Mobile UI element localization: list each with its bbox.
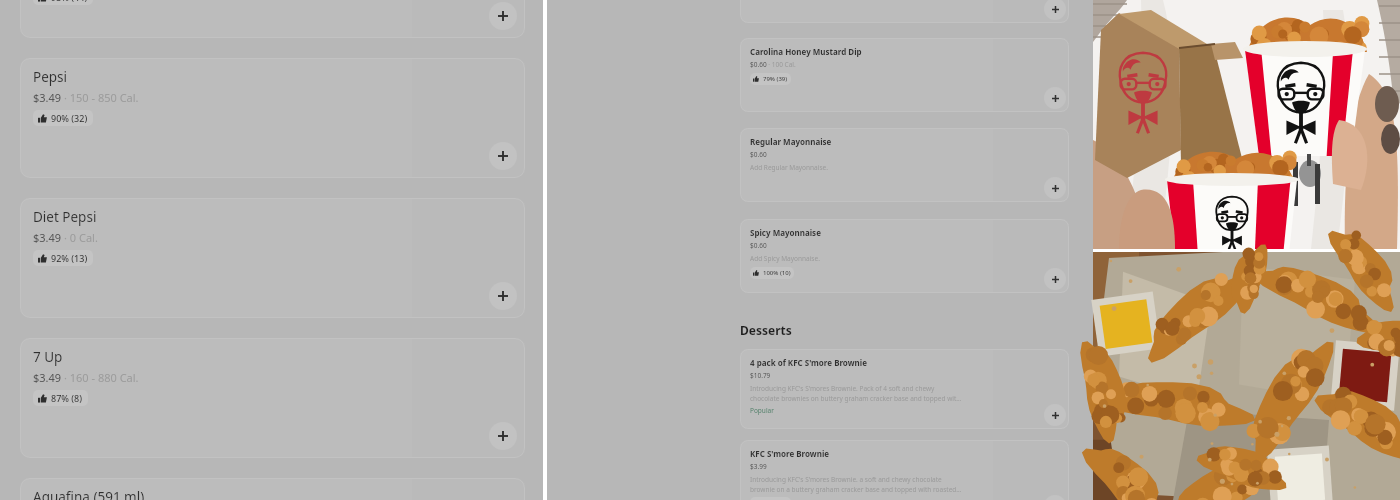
staticText: Carolina Honey Mustard Dip (750, 46, 862, 57)
staticText: Desserts (740, 322, 792, 338)
staticText: 87% (8) (51, 392, 83, 404)
staticText: Add Spicy Mayonnaise. (750, 254, 820, 263)
button[interactable]: Add to order (1044, 177, 1066, 199)
button[interactable]: Spicy Mayonnaise (740, 219, 1069, 293)
button[interactable]: 7 Up (20, 338, 525, 458)
button[interactable]: Diet Pepsi (20, 198, 525, 318)
staticText: $0.60 · 100 Cal. (750, 60, 796, 69)
staticText: 100% (10) (763, 269, 791, 277)
button[interactable]: Add to order (1044, 495, 1066, 500)
button[interactable]: Add to order (489, 282, 517, 310)
staticText: $3.99 (750, 462, 767, 471)
staticText: Popular (750, 406, 774, 415)
button[interactable]: Aquafina (591 ml) (20, 478, 525, 500)
staticText: $0.60 (750, 241, 767, 250)
staticText: $0.60 (750, 150, 767, 159)
button[interactable]: Add to order (1044, 0, 1066, 20)
staticText: 7 Up (33, 348, 63, 366)
staticText: Add Regular Mayonnaise. (750, 163, 828, 172)
button[interactable]: Add to order (489, 2, 517, 30)
staticText: $3.49 · 0 Cal. (33, 230, 98, 245)
button[interactable]: 4 pack of KFC S'more Brownie (740, 349, 1069, 429)
button[interactable]: Regular Mayonnaise (740, 128, 1069, 202)
button[interactable]: Add to order (1044, 87, 1066, 109)
staticText: 4 pack of KFC S'more Brownie (750, 357, 867, 368)
button[interactable]: Add to order (489, 422, 517, 450)
staticText: 92% (13) (51, 252, 88, 264)
staticText: Introducing KFC's S'mores Brownie. Pack … (750, 384, 962, 403)
staticText: Diet Pepsi (33, 208, 97, 226)
staticText: Pepsi (33, 68, 68, 86)
button[interactable]: KFC S'more Brownie (740, 440, 1069, 500)
staticText: $3.49 · 150 - 850 Cal. (33, 90, 139, 105)
button[interactable]: Mtn Dew (20, 0, 525, 38)
staticText: Introducing KFC's S'mores Brownie. a sof… (750, 475, 962, 494)
button[interactable]: Pepsi (20, 58, 525, 178)
button[interactable]: Add to order (1044, 268, 1066, 290)
staticText: 79% (39) (763, 75, 788, 83)
button[interactable]: Add to order (1044, 404, 1066, 426)
staticText: $10.79 (750, 371, 771, 380)
staticText: $3.49 · 160 - 880 Cal. (33, 370, 139, 385)
staticText: Regular Mayonnaise (750, 136, 832, 147)
button[interactable]: Carolina Honey Mustard Dip (740, 38, 1069, 112)
staticText: Spicy Mayonnaise (750, 227, 821, 238)
button[interactable]: KFC bucket photo (1093, 0, 1400, 249)
staticText: 93% (44) (51, 0, 88, 3)
button[interactable]: Honey BBQ Dip (740, 0, 1069, 23)
staticText: Aquafina (591 ml) (33, 488, 145, 500)
button[interactable]: Chicken tenders photo (1093, 252, 1400, 500)
button[interactable]: Add to order (489, 142, 517, 170)
staticText: KFC S'more Brownie (750, 448, 830, 459)
staticText: 90% (32) (51, 112, 88, 124)
